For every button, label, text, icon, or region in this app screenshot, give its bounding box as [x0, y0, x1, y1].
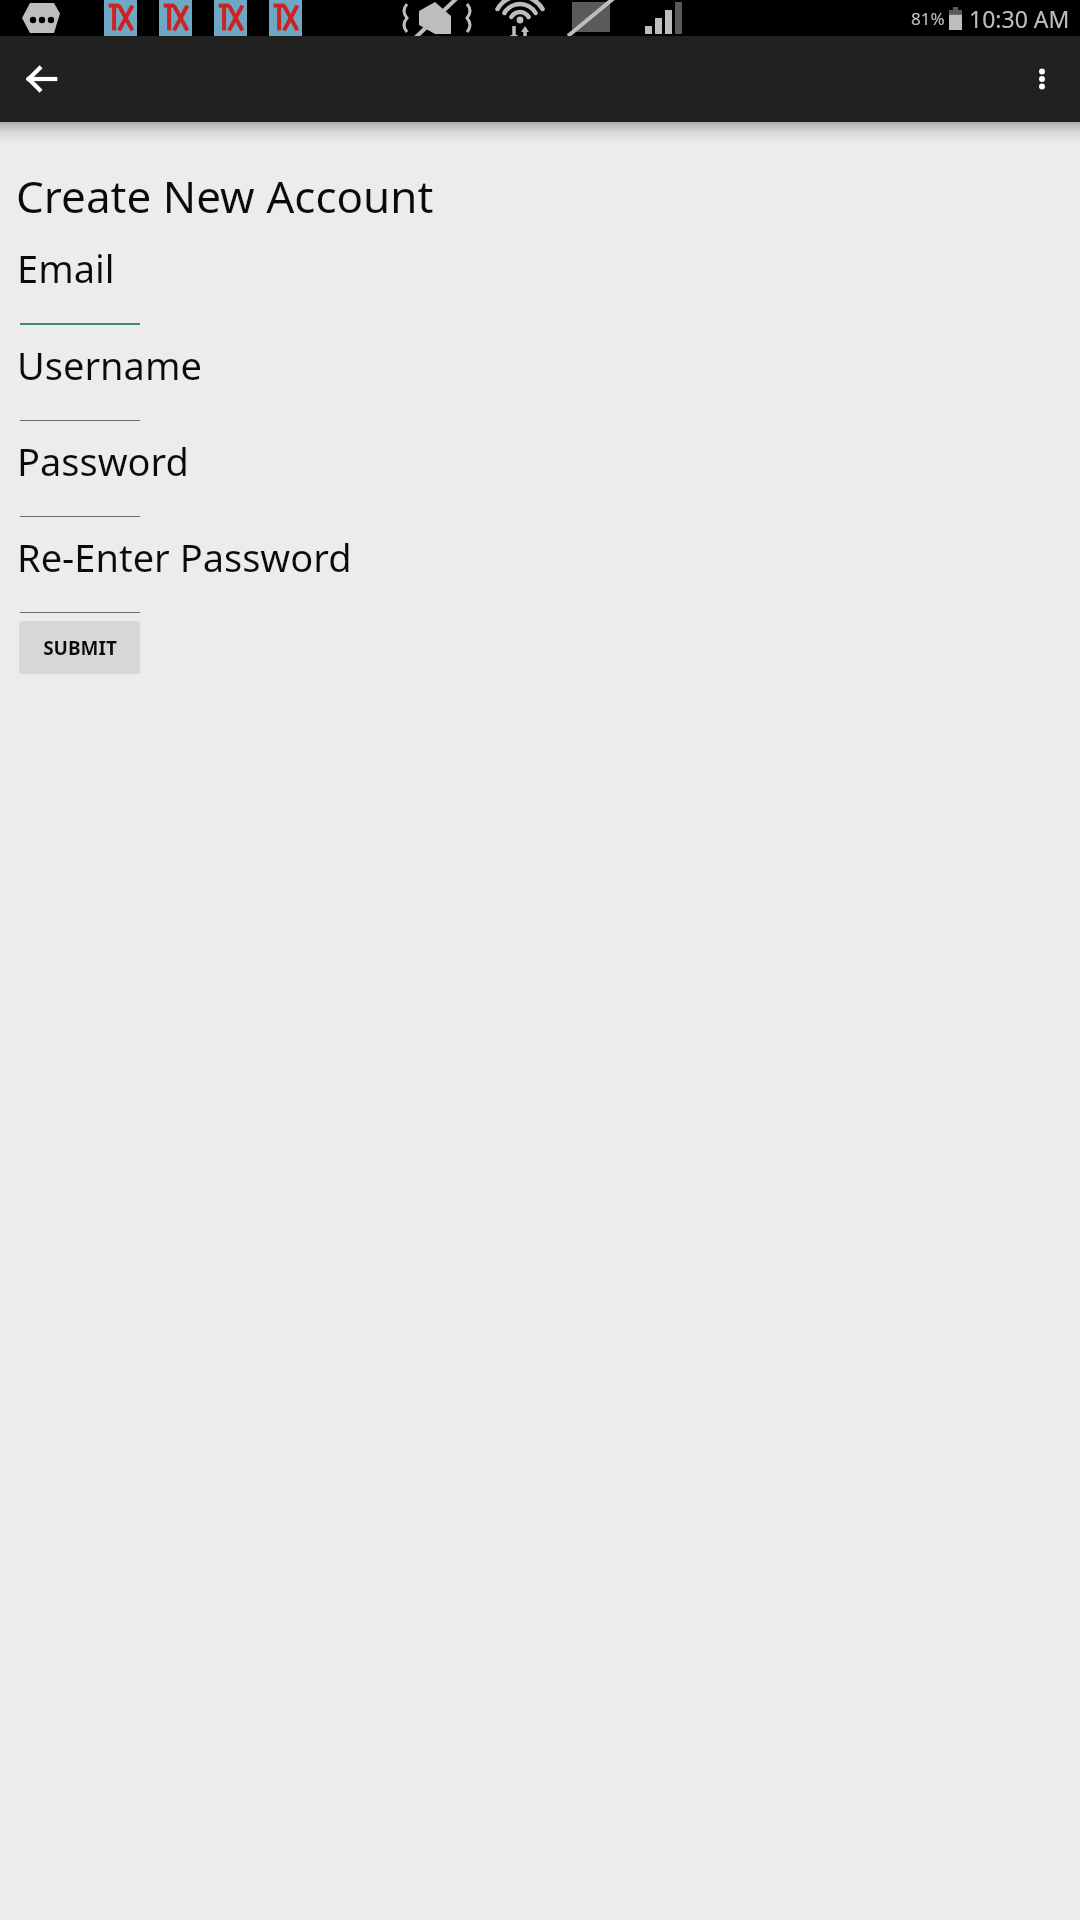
- staticText: 81%: [911, 7, 945, 30]
- button[interactable]: Email: [0, 228, 1080, 325]
- button[interactable]: SUBMIT: [19, 621, 140, 674]
- staticText: 10:30 AM: [969, 3, 1070, 34]
- button[interactable]: Password: [0, 421, 1080, 517]
- staticText: Create New Account: [16, 166, 434, 226]
- button[interactable]: Re-Enter Password: [0, 517, 1080, 613]
- button[interactable]: Navigate up: [18, 55, 66, 103]
- button[interactable]: Username: [0, 325, 1080, 421]
- staticText: SUBMIT: [43, 635, 117, 661]
- staticText: Password: [17, 435, 189, 487]
- staticText: Email: [17, 242, 115, 294]
- staticText: Username: [17, 339, 202, 391]
- button[interactable]: More options: [1018, 55, 1066, 103]
- staticText: Re-Enter Password: [17, 531, 352, 583]
